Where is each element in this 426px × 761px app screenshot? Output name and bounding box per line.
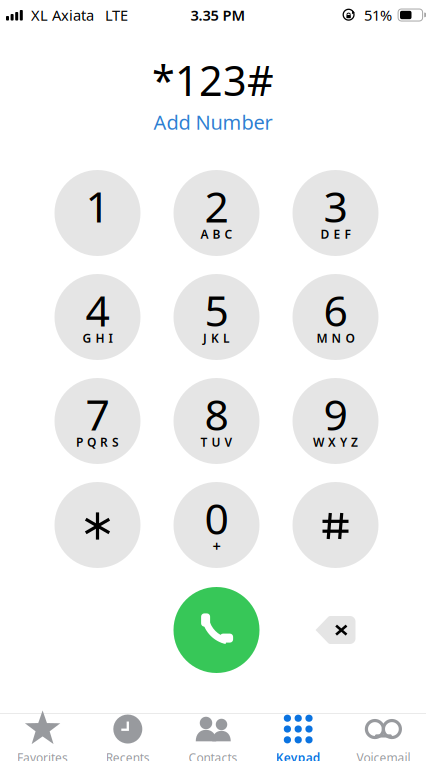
button[interactable]: Contacts — [170, 714, 256, 761]
button[interactable]: 7 — [54, 378, 140, 464]
staticText: G H I — [82, 330, 112, 346]
staticText: 5 — [204, 282, 228, 338]
staticText: M N O — [316, 330, 354, 346]
staticText: Voicemail — [356, 749, 410, 761]
button[interactable]: Call — [173, 587, 259, 673]
staticText: Contacts — [188, 749, 237, 761]
staticText: Favorites — [17, 749, 68, 761]
button[interactable]: Keypad — [256, 714, 341, 761]
staticText: *123# — [152, 53, 274, 107]
staticText: D E F — [320, 226, 350, 242]
button[interactable]: 9 — [292, 378, 378, 464]
staticText: T U V — [200, 434, 232, 450]
staticText: LTE — [105, 5, 128, 25]
staticText: 3 — [323, 178, 347, 234]
button[interactable]: Voicemail — [341, 714, 426, 761]
staticText: Add Number — [153, 109, 272, 135]
button[interactable]: Pound — [292, 482, 378, 568]
button[interactable]: Favorites — [0, 714, 85, 761]
button[interactable]: 8 — [173, 378, 259, 464]
staticText: + — [212, 536, 220, 556]
staticText: J K L — [203, 330, 230, 346]
staticText: 0 — [204, 490, 228, 546]
staticText: 7 — [85, 386, 109, 442]
staticText: 8 — [204, 386, 228, 442]
staticText: Recents — [106, 749, 150, 761]
staticText: 1 — [85, 178, 109, 234]
button[interactable]: 4 — [54, 274, 140, 360]
staticText: A B C — [200, 226, 232, 242]
button[interactable]: Delete — [315, 616, 355, 644]
button[interactable]: Add Number — [153, 112, 272, 132]
staticText: XL Axiata — [31, 5, 94, 25]
button[interactable]: 1 — [54, 170, 140, 256]
button[interactable]: Star — [54, 482, 140, 568]
staticText: 2 — [204, 178, 228, 234]
staticText: Keypad — [276, 749, 321, 761]
staticText: P Q R S — [76, 434, 119, 450]
button[interactable]: 2 — [173, 170, 259, 256]
staticText: 3.35 PM — [190, 5, 245, 25]
button[interactable]: Recents — [85, 714, 170, 761]
staticText: 9 — [323, 386, 347, 442]
staticText: 51% — [364, 5, 392, 25]
staticText: 4 — [85, 282, 109, 338]
button[interactable]: 0 — [173, 482, 259, 568]
staticText: W X Y Z — [313, 434, 358, 450]
button[interactable]: 5 — [173, 274, 259, 360]
button[interactable]: 3 — [292, 170, 378, 256]
button[interactable]: 6 — [292, 274, 378, 360]
staticText: 6 — [323, 282, 347, 338]
